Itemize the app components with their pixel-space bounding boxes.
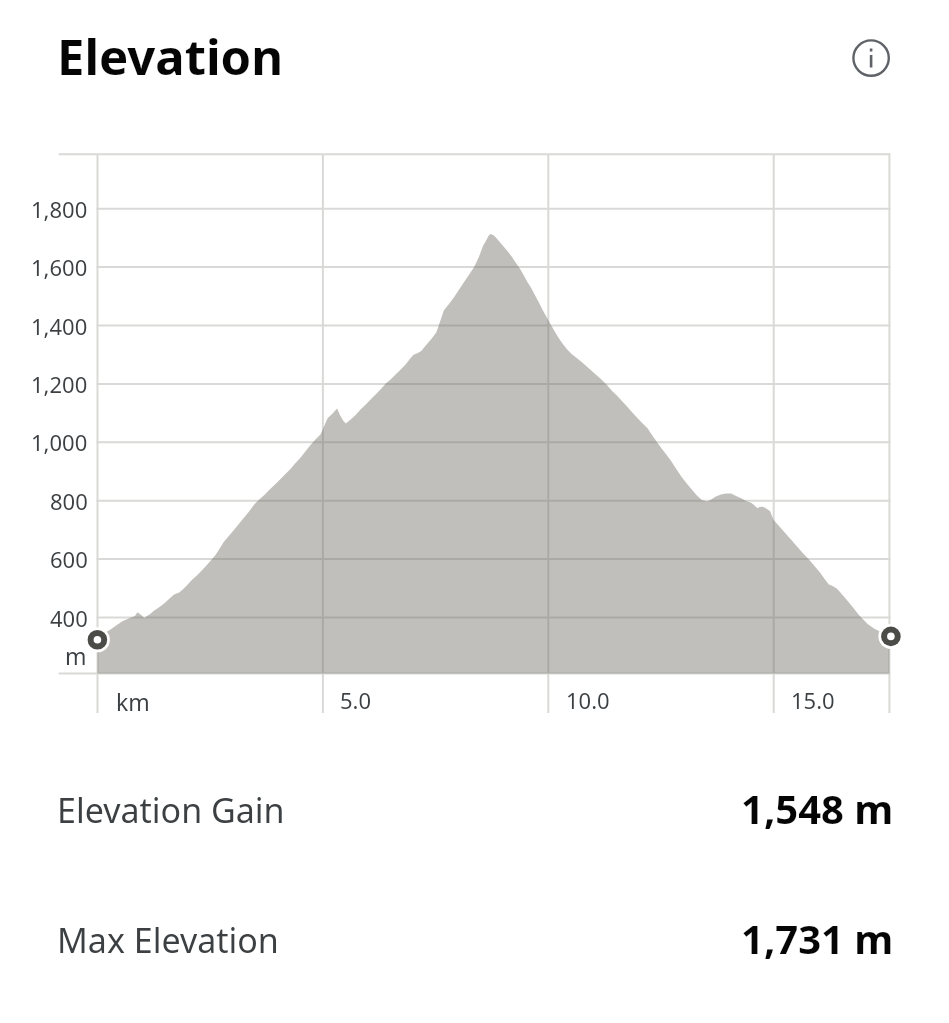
staticText: 800 bbox=[50, 486, 88, 516]
staticText: 10.0 bbox=[566, 685, 610, 715]
button[interactable]: Max Elevation bbox=[0, 914, 949, 966]
staticText: 1,731 m bbox=[741, 911, 894, 963]
staticText: 1,600 bbox=[31, 252, 88, 282]
staticText: 1,548 m bbox=[741, 781, 894, 833]
staticText: Elevation Gain bbox=[57, 787, 285, 833]
staticText: 600 bbox=[50, 544, 88, 574]
staticText: 1,400 bbox=[31, 311, 88, 341]
staticText: 1,000 bbox=[31, 427, 88, 457]
staticText: 1,200 bbox=[31, 369, 88, 399]
button[interactable]: Info bbox=[845, 32, 897, 84]
staticText: km bbox=[116, 686, 150, 717]
staticText: Max Elevation bbox=[57, 917, 279, 963]
staticText: 15.0 bbox=[791, 685, 835, 715]
staticText: 1,800 bbox=[31, 194, 88, 224]
button[interactable]: Elevation Gain bbox=[0, 784, 949, 836]
staticText: Elevation bbox=[57, 23, 284, 90]
staticText: 5.0 bbox=[340, 685, 372, 715]
staticText: m bbox=[65, 640, 87, 671]
staticText: 400 bbox=[50, 603, 88, 633]
